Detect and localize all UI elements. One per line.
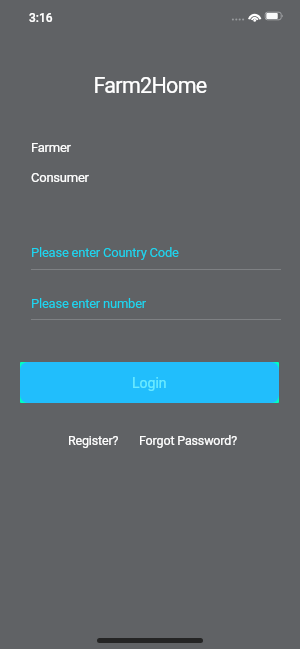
staticText: Please enter Country Code: [31, 245, 179, 260]
other: Cellular signal: [231, 15, 245, 24]
staticText: Please enter number: [31, 296, 146, 311]
staticText: Farm2Home: [0, 73, 300, 98]
staticText: Forgot Password?: [139, 433, 237, 448]
button[interactable]: Forgot Password?: [139, 433, 237, 448]
other: Battery: [265, 11, 285, 21]
other: Wi-Fi: [248, 11, 262, 22]
staticText: Register?: [68, 433, 119, 448]
button[interactable]: Farmer: [31, 140, 71, 155]
button[interactable]: Login: [20, 362, 279, 403]
staticText: 3:16: [29, 11, 53, 25]
staticText: Farmer: [31, 140, 71, 155]
button[interactable]: Please enter Country Code: [31, 245, 281, 260]
staticText: Login: [132, 375, 167, 391]
button[interactable]: Consumer: [31, 170, 89, 185]
staticText: Consumer: [31, 170, 89, 185]
button[interactable]: Register?: [68, 433, 119, 448]
button[interactable]: Please enter number: [31, 296, 281, 311]
